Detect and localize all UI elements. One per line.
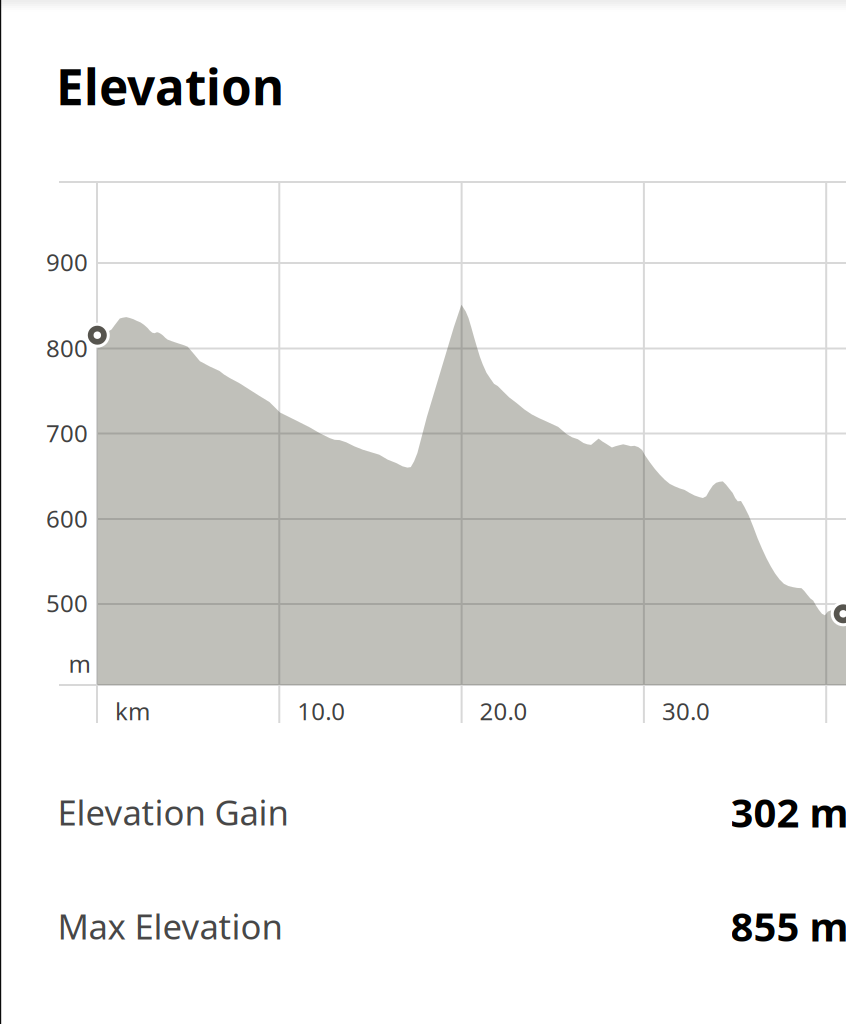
- staticText: 800: [46, 332, 88, 364]
- staticText: Max Elevation: [57, 903, 282, 949]
- staticText: m: [68, 648, 90, 679]
- staticText: 30.0: [662, 695, 710, 727]
- button[interactable]: Max Elevation: [0, 878, 846, 974]
- staticText: Elevation: [56, 53, 284, 119]
- staticText: 302 m: [730, 785, 846, 838]
- staticText: Elevation Gain: [57, 789, 288, 835]
- staticText: km: [115, 695, 150, 727]
- staticText: 20.0: [480, 695, 528, 727]
- staticText: 855 m: [730, 899, 846, 952]
- staticText: 500: [46, 587, 88, 619]
- staticText: 600: [46, 503, 88, 534]
- staticText: 900: [46, 246, 88, 278]
- button[interactable]: Elevation Gain: [0, 764, 846, 860]
- staticText: 700: [46, 417, 88, 449]
- staticText: 10.0: [297, 695, 345, 727]
